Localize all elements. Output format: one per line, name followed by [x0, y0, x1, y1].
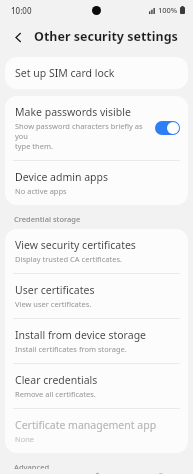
- staticText: None: [15, 434, 35, 444]
- staticText: Display trusted CA certificates.: [15, 254, 122, 264]
- staticText: Install certificates from storage.: [15, 344, 127, 354]
- button[interactable]: Make passwords visible: [5, 96, 188, 160]
- button[interactable]: Back: [5, 24, 31, 50]
- staticText: No active apps: [15, 186, 67, 196]
- button[interactable]: View security certificates: [5, 229, 188, 273]
- button[interactable]: Install from device storage: [5, 319, 188, 363]
- staticText: Set up SIM card lock: [15, 66, 115, 80]
- staticText: 10:00: [11, 5, 32, 16]
- button[interactable]: User certificates: [5, 274, 188, 318]
- staticText: View user certificates.: [15, 299, 92, 309]
- staticText: Device admin apps: [15, 170, 109, 184]
- staticText: Advanced: [14, 462, 50, 469]
- staticText: User certificates: [15, 283, 95, 297]
- button[interactable]: Set up SIM card lock: [5, 57, 188, 89]
- staticText: 100%: [158, 5, 178, 15]
- button[interactable]: Clear credentials: [5, 364, 188, 408]
- staticText: Make passwords visible: [15, 105, 131, 119]
- staticText: View security certificates: [15, 238, 136, 252]
- staticText: Remove all certificates.: [15, 389, 96, 399]
- staticText: Clear credentials: [15, 373, 98, 387]
- staticText: Install from device storage: [15, 328, 147, 342]
- staticText: Other security settings: [34, 28, 178, 45]
- staticText: Show password characters briefly as you …: [15, 121, 149, 151]
- staticText: Credential storage: [14, 214, 81, 224]
- staticText: Certificate management app: [15, 418, 157, 432]
- button[interactable]: Device admin apps: [5, 161, 188, 205]
- button[interactable]: Certificate management app: [5, 409, 188, 453]
- button[interactable]: Make passwords visible toggle: [155, 121, 180, 135]
